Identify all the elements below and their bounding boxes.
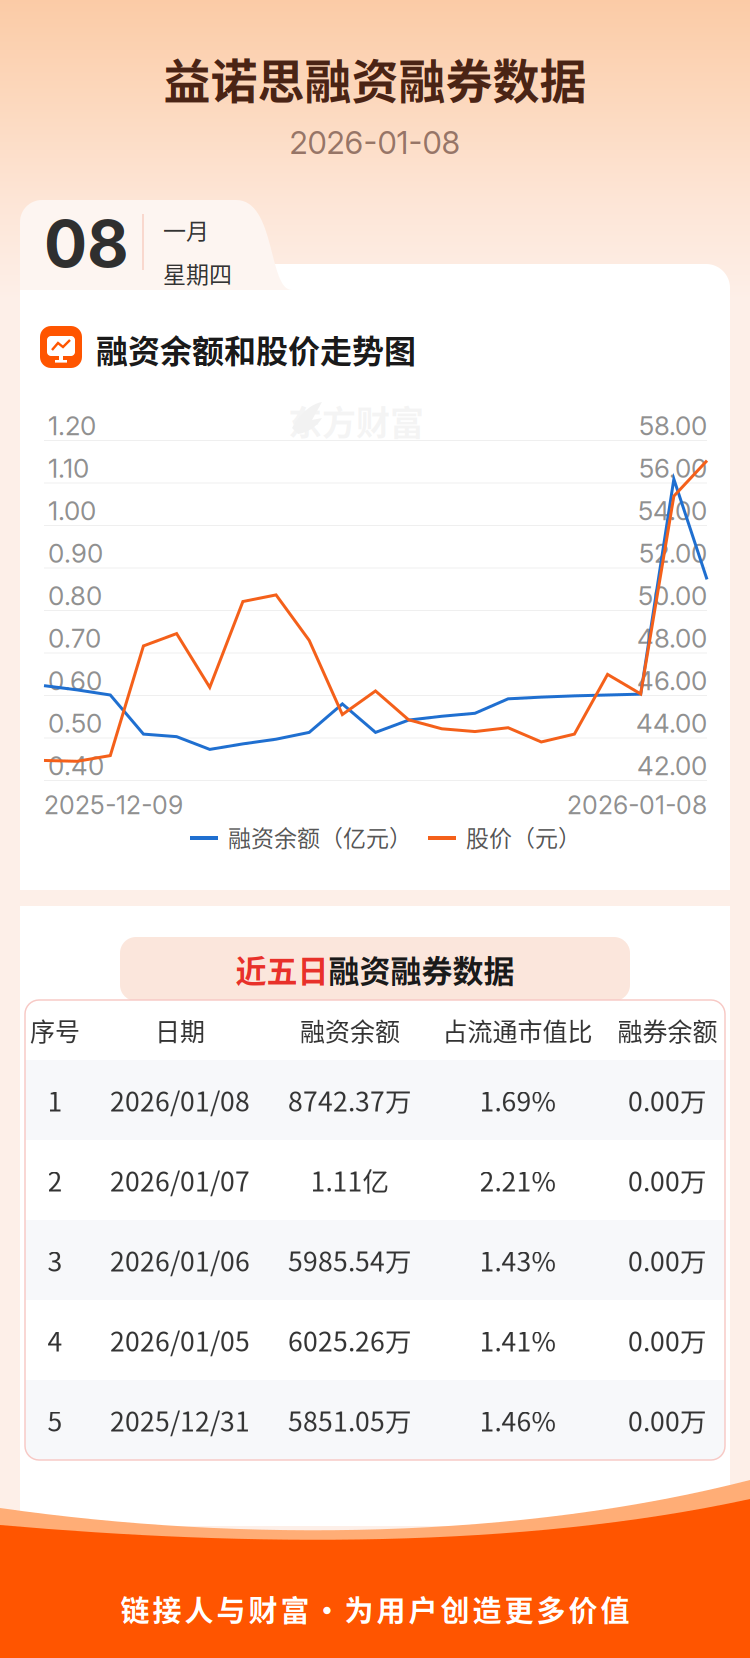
staticText: 1.20: [48, 410, 96, 441]
staticText: 2026/01/07: [110, 1161, 250, 1199]
staticText: 1.41%: [479, 1321, 555, 1359]
staticText: 融资余额和股价走势图: [96, 326, 416, 372]
staticText: 近五日: [235, 947, 328, 991]
staticText: 2026-01-08: [289, 124, 460, 162]
staticText: 8742.37万: [288, 1081, 412, 1119]
staticText: 0.00万: [628, 1161, 707, 1199]
staticText: 0.90: [48, 537, 103, 569]
staticText: 54.00: [638, 495, 707, 526]
staticText: 东方财富: [288, 396, 424, 445]
staticText: 0.60: [48, 665, 102, 696]
staticText: 融资融券数据: [328, 947, 514, 991]
staticText: 48.00: [637, 622, 707, 654]
staticText: 1.11亿: [310, 1161, 389, 1199]
staticText: 1.69%: [479, 1081, 555, 1119]
staticText: 0.00万: [628, 1241, 707, 1279]
staticText: 5985.54万: [288, 1241, 412, 1279]
staticText: 6025.26万: [288, 1321, 412, 1359]
staticText: 50.00: [638, 580, 707, 611]
staticText: 0.50: [48, 707, 102, 739]
staticText: 0.80: [48, 580, 102, 611]
staticText: 46.00: [637, 665, 707, 696]
staticText: 融资余额: [300, 1012, 400, 1048]
staticText: 日期: [155, 1012, 205, 1048]
staticText: 星期四: [163, 256, 232, 290]
staticText: 融券余额: [617, 1012, 717, 1048]
staticText: 3: [47, 1241, 62, 1279]
staticText: 08: [44, 205, 129, 282]
staticText: 58.00: [639, 410, 707, 441]
staticText: 益诺思融资融券数据: [163, 44, 586, 112]
staticText: 序号: [30, 1012, 80, 1048]
staticText: 1: [47, 1081, 62, 1119]
staticText: 2: [47, 1161, 62, 1199]
staticText: 1.00: [48, 495, 96, 526]
staticText: 占流通市值比: [442, 1012, 592, 1048]
staticText: 融资余额（亿元）: [228, 820, 412, 853]
staticText: 2026/01/06: [110, 1241, 250, 1279]
staticText: 一月: [163, 213, 209, 246]
staticText: 56.00: [639, 452, 707, 484]
staticText: 52.00: [639, 537, 707, 569]
staticText: 2026-01-08: [567, 790, 707, 820]
staticText: 股价（元）: [466, 820, 581, 853]
staticText: 0.00万: [628, 1081, 707, 1119]
staticText: 5851.05万: [288, 1401, 412, 1439]
staticText: 2025/12/31: [110, 1401, 250, 1439]
staticText: 0.00万: [628, 1321, 707, 1359]
staticText: 0.40: [48, 750, 104, 781]
staticText: 1.10: [48, 452, 89, 484]
staticText: 1.46%: [479, 1401, 555, 1439]
staticText: 1.43%: [479, 1241, 555, 1279]
staticText: 2.21%: [479, 1161, 555, 1199]
staticText: 2026/01/05: [110, 1321, 250, 1359]
staticText: 2025-12-09: [44, 790, 183, 820]
staticText: 链接人与财富·为用户创造更多价值: [120, 1588, 629, 1630]
staticText: 2026/01/08: [110, 1081, 250, 1119]
staticText: 44.00: [636, 707, 707, 739]
staticText: 0.00万: [628, 1401, 707, 1439]
staticText: 4: [47, 1321, 62, 1359]
staticText: 5: [47, 1401, 62, 1439]
staticText: 0.70: [48, 622, 101, 654]
staticText: 42.00: [637, 750, 707, 781]
